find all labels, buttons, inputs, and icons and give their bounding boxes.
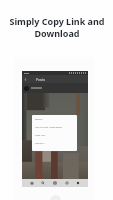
staticText: Posts (36, 77, 46, 82)
button[interactable]: Back (24, 78, 27, 81)
button[interactable]: Nav item 4 (76, 181, 80, 185)
button[interactable]: Nav item 3 (65, 181, 69, 185)
button[interactable]: Share to... (35, 142, 46, 145)
staticText: Simply Copy Link and Download (9, 15, 105, 40)
staticText: Turn On Post Notifications (35, 126, 62, 129)
button[interactable]: Copy Link (35, 134, 45, 137)
staticText: Copy Link (35, 134, 45, 137)
button[interactable]: Report... (35, 118, 44, 121)
staticText: Share to... (35, 142, 46, 145)
button[interactable]: Nav item 0 (30, 181, 34, 185)
button[interactable]: Nav item 2 (53, 181, 57, 185)
staticText: Report... (35, 118, 44, 121)
button[interactable]: Turn On Post Notifications (35, 126, 62, 129)
button[interactable]: Nav item 1 (41, 181, 45, 185)
